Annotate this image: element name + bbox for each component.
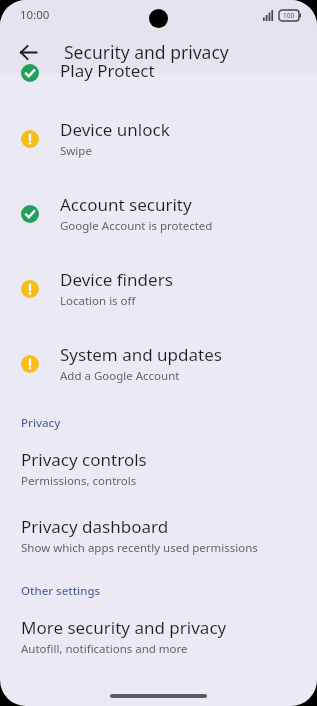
staticText: Google Account is protected bbox=[60, 218, 213, 234]
staticText: Privacy bbox=[21, 415, 61, 431]
staticText: Autofill, notifications and more bbox=[21, 641, 188, 657]
button[interactable]: Device finders bbox=[0, 251, 317, 326]
staticText: Device finders bbox=[60, 268, 173, 291]
button[interactable]: Privacy controls bbox=[0, 435, 317, 502]
button[interactable]: Device unlock bbox=[0, 101, 317, 176]
staticText: More security and privacy bbox=[21, 616, 227, 639]
button[interactable]: Play Protect bbox=[0, 73, 317, 101]
staticText: Security and privacy bbox=[64, 40, 229, 64]
staticText: Privacy controls bbox=[21, 448, 147, 471]
staticText: Add a Google Account bbox=[60, 368, 180, 384]
staticText: Other settings bbox=[21, 583, 101, 599]
staticText: Permissions, controls bbox=[21, 473, 137, 489]
staticText: Show which apps recently used permission… bbox=[21, 540, 258, 556]
staticText: Privacy dashboard bbox=[21, 515, 169, 538]
button[interactable]: Privacy dashboard bbox=[0, 502, 317, 569]
staticText: Account security bbox=[60, 193, 192, 216]
staticText: 10:00 bbox=[20, 7, 50, 23]
staticText: Play Protect bbox=[60, 59, 155, 82]
button[interactable]: System and updates bbox=[0, 326, 317, 401]
staticText: 100 bbox=[283, 11, 295, 20]
staticText: Device unlock bbox=[60, 118, 170, 141]
button[interactable]: Back bbox=[10, 34, 46, 70]
staticText: Swipe bbox=[60, 143, 92, 159]
button[interactable]: More security and privacy bbox=[0, 603, 317, 670]
staticText: Location is off bbox=[60, 293, 136, 309]
staticText: System and updates bbox=[60, 343, 222, 366]
button[interactable]: Account security bbox=[0, 176, 317, 251]
